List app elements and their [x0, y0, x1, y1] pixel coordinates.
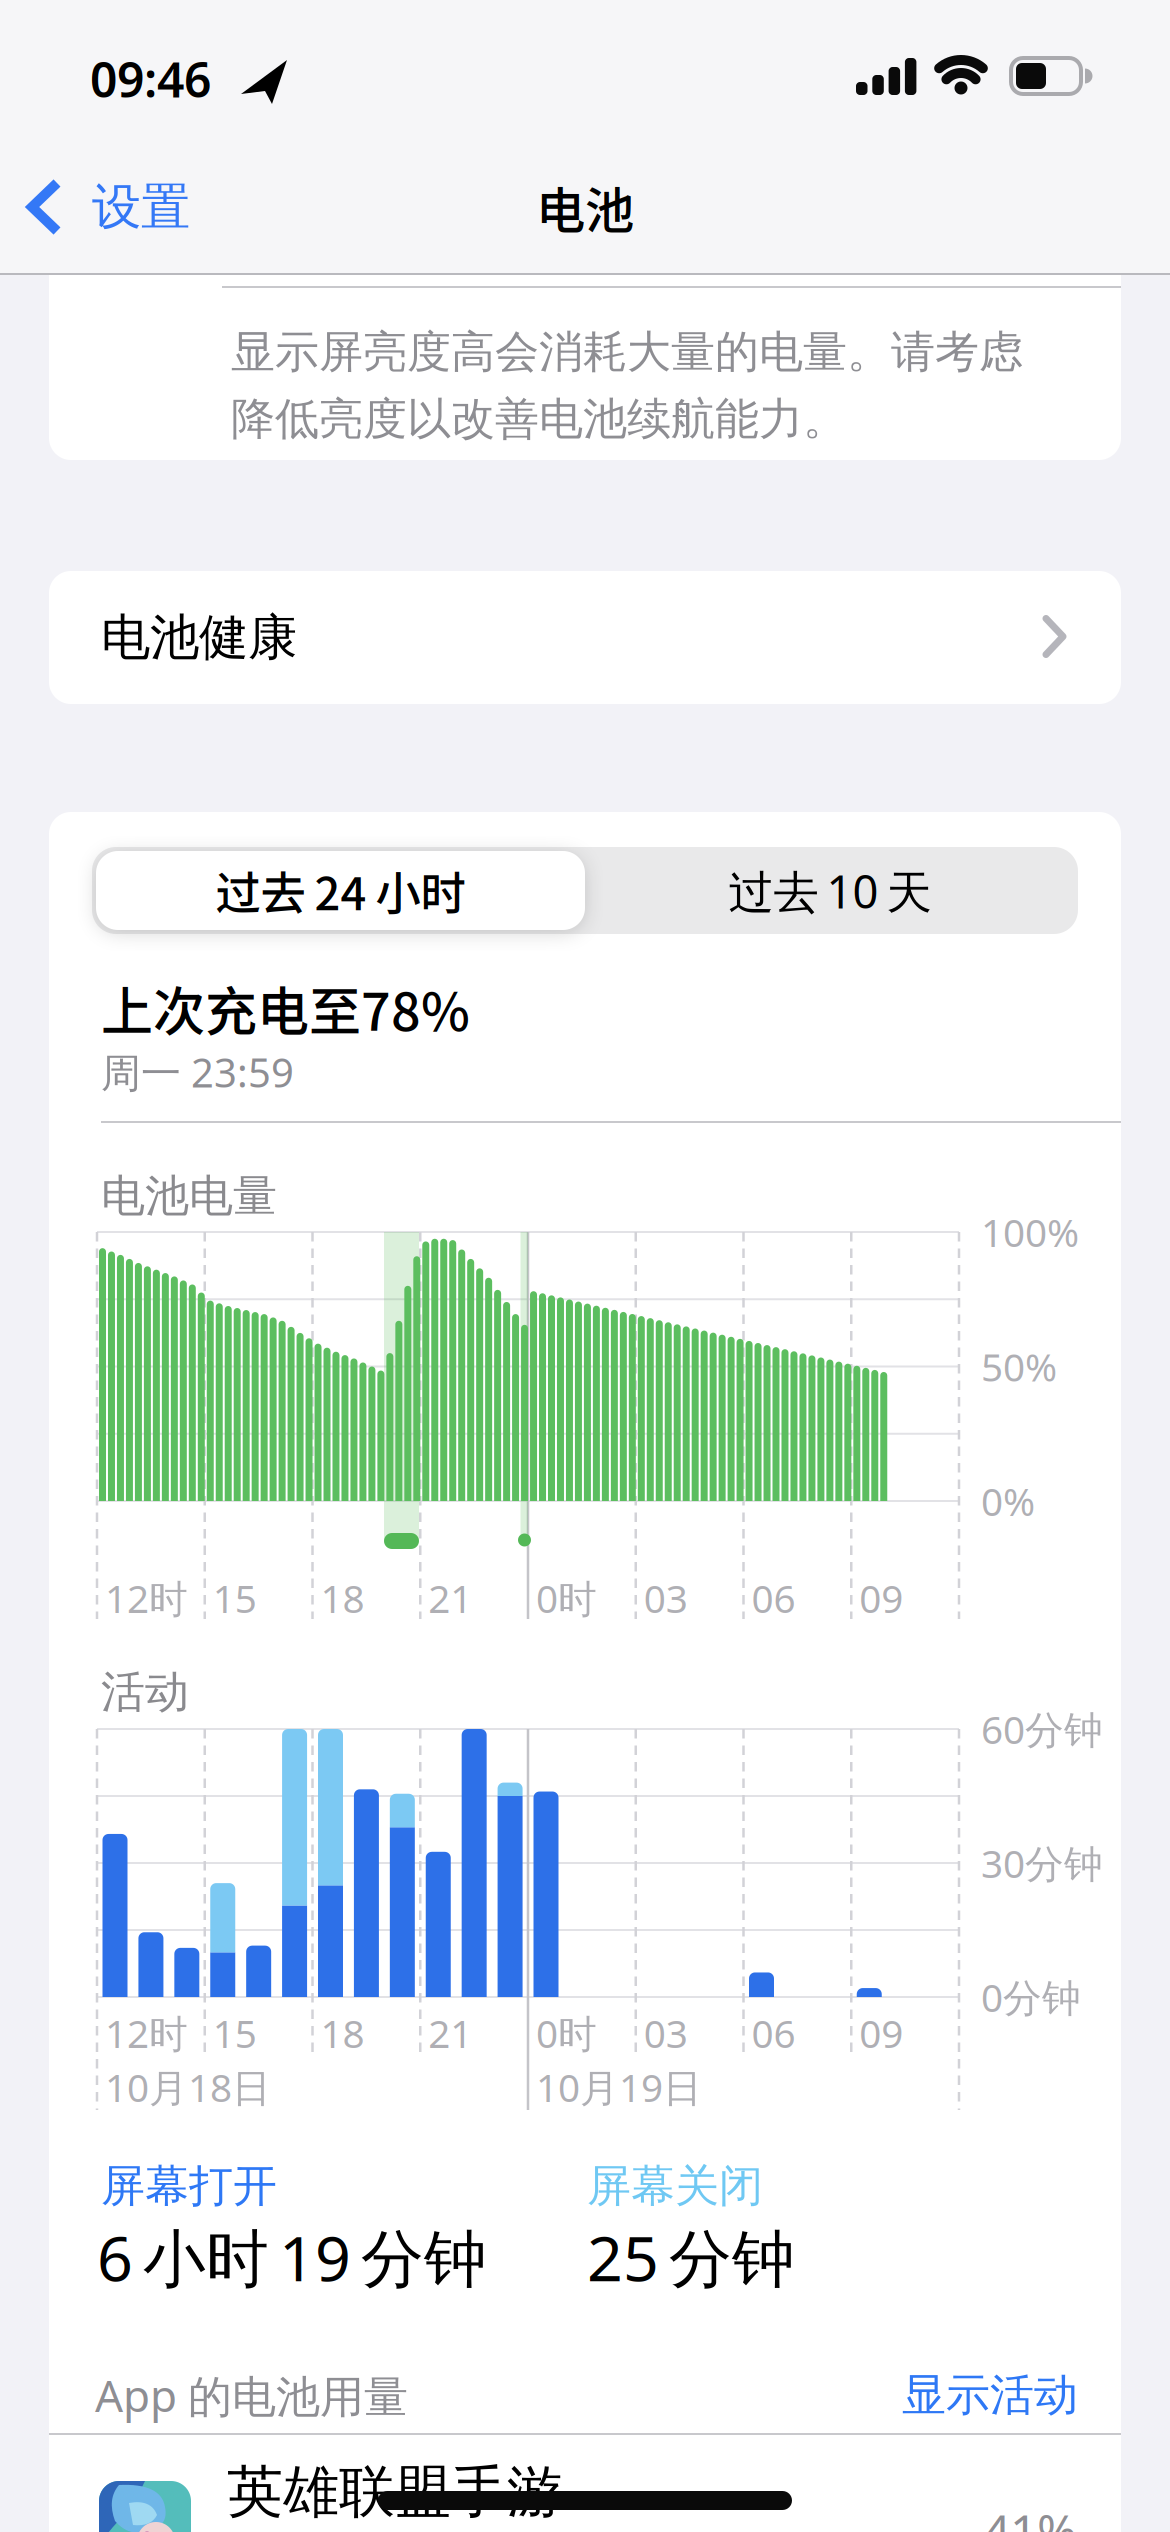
staticText: 0时	[536, 2007, 597, 2059]
staticText: 18	[320, 1572, 364, 1624]
button[interactable]: 设置	[0, 161, 250, 253]
staticText: 过去 24 小时	[215, 858, 465, 923]
staticText: App 的电池用量	[95, 2366, 408, 2424]
staticText: 12时	[105, 1572, 188, 1624]
staticText: 100%	[981, 1206, 1079, 1258]
staticText: 06	[751, 1572, 795, 1624]
staticText: 0%	[981, 1475, 1035, 1527]
staticText: 30分钟	[981, 1837, 1103, 1889]
staticText: 06	[751, 2007, 795, 2059]
button[interactable]: 英雄联盟手游	[49, 2436, 1121, 2532]
staticText: 15	[213, 1572, 257, 1624]
staticText: 电池	[536, 171, 634, 243]
staticText: 显示屏亮度高会消耗大量的电量。请考虑	[231, 325, 1023, 379]
staticText: 10月18日	[105, 2061, 271, 2113]
staticText: 60分钟	[981, 1703, 1103, 1755]
staticText: 09:46	[90, 47, 211, 111]
staticText: 21	[428, 2007, 472, 2059]
staticText: 周一 23:59	[101, 1045, 294, 1098]
staticText: 09	[859, 1572, 903, 1624]
staticText: 英雄联盟手游	[227, 2458, 563, 2526]
staticText: 0分钟	[981, 1971, 1081, 2023]
staticText: 屏幕关闭	[587, 2159, 763, 2213]
button[interactable]: 过去 24 小时	[96, 851, 585, 930]
staticText: 41%	[983, 2499, 1077, 2532]
staticText: 03	[644, 2007, 688, 2059]
button[interactable]: 显示活动	[778, 2360, 1078, 2430]
staticText: 屏幕打开	[101, 2159, 277, 2213]
staticText: 显示活动	[902, 2368, 1078, 2422]
staticText: 上次充电至78%	[101, 970, 470, 1046]
staticText: 12时	[105, 2007, 188, 2059]
staticText: 降低亮度以改善电池续航能力。	[231, 392, 847, 446]
staticText: 0时	[536, 1572, 597, 1624]
button[interactable]: 电池健康	[49, 571, 1121, 704]
staticText: 6 小时 19 分钟	[97, 2215, 487, 2299]
staticText: 15	[213, 2007, 257, 2059]
staticText: 18	[320, 2007, 364, 2059]
staticText: 03	[644, 1572, 688, 1624]
staticText: 25 分钟	[587, 2215, 795, 2299]
staticText: 过去 10 天	[728, 861, 931, 921]
staticText: 电池电量	[101, 1169, 277, 1223]
staticText: 50%	[981, 1341, 1057, 1392]
staticText: 电池健康	[101, 607, 297, 668]
staticText: 10月19日	[536, 2061, 702, 2113]
staticText: 活动	[101, 1665, 189, 1719]
staticText: 设置	[92, 177, 190, 237]
staticText: 09	[859, 2007, 903, 2059]
button[interactable]: 过去 10 天	[590, 851, 1070, 931]
staticText: 21	[428, 1572, 472, 1624]
